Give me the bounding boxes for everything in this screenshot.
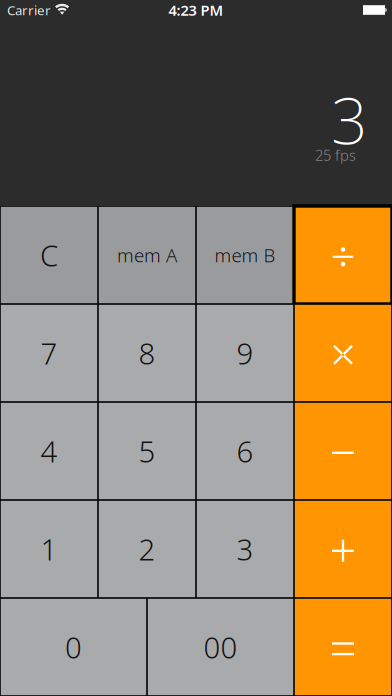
staticText: 3: [236, 529, 253, 568]
staticText: 3: [331, 77, 367, 162]
staticText: 5: [138, 431, 155, 470]
staticText: 4:23 PM: [168, 0, 223, 20]
staticText: 8: [138, 333, 155, 372]
button[interactable]: [0, 598, 147, 696]
button[interactable]: Divide: [294, 206, 392, 304]
button[interactable]: Add: [294, 500, 392, 598]
staticText: 2: [138, 529, 155, 568]
staticText: Carrier: [7, 1, 51, 19]
staticText: 9: [236, 333, 253, 372]
button[interactable]: [196, 304, 294, 402]
button[interactable]: [98, 304, 196, 402]
button[interactable]: [98, 402, 196, 500]
button[interactable]: [98, 206, 196, 304]
button[interactable]: [98, 500, 196, 598]
button[interactable]: Subtract: [294, 402, 392, 500]
button[interactable]: [147, 598, 294, 696]
staticText: 0: [65, 627, 82, 666]
button[interactable]: Multiply: [294, 304, 392, 402]
staticText: 1: [40, 529, 57, 568]
button[interactable]: Equals: [294, 598, 392, 696]
staticText: 6: [236, 431, 253, 470]
button[interactable]: [0, 500, 98, 598]
staticText: 4: [40, 431, 57, 470]
button[interactable]: [196, 206, 294, 304]
button[interactable]: [196, 500, 294, 598]
staticText: 00: [203, 627, 237, 666]
staticText: 25 fps: [315, 145, 356, 165]
button[interactable]: [196, 402, 294, 500]
button[interactable]: [0, 206, 98, 304]
button[interactable]: [0, 402, 98, 500]
button[interactable]: [0, 304, 98, 402]
staticText: mem A: [117, 243, 177, 267]
staticText: mem B: [214, 243, 275, 267]
staticText: C: [40, 235, 58, 274]
staticText: 7: [40, 333, 57, 372]
